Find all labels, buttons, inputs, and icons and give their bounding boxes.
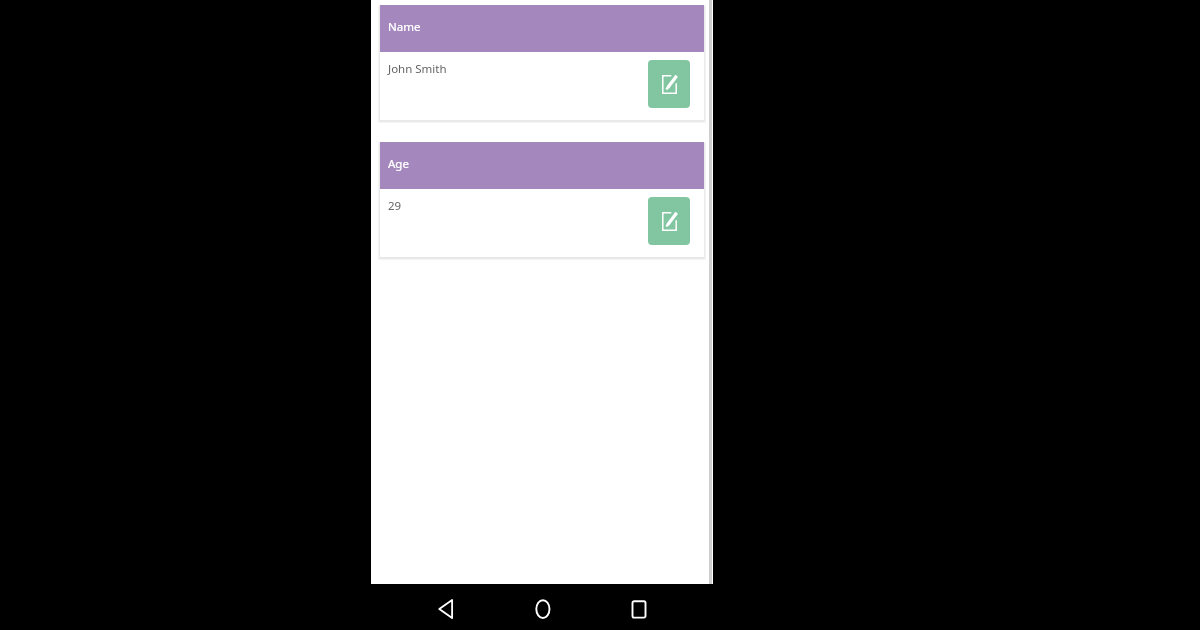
- button[interactable]: Home: [495, 584, 591, 630]
- button[interactable]: Name: [380, 5, 704, 120]
- button[interactable]: Recent apps: [591, 584, 687, 630]
- staticText: 29: [388, 198, 402, 214]
- staticText: Age: [388, 156, 409, 172]
- staticText: John Smith: [388, 61, 447, 77]
- button[interactable]: Age: [380, 142, 704, 257]
- button[interactable]: Edit Age: [648, 197, 690, 245]
- button[interactable]: Back: [398, 584, 495, 630]
- staticText: Name: [388, 19, 421, 35]
- button[interactable]: Edit Name: [648, 60, 690, 108]
